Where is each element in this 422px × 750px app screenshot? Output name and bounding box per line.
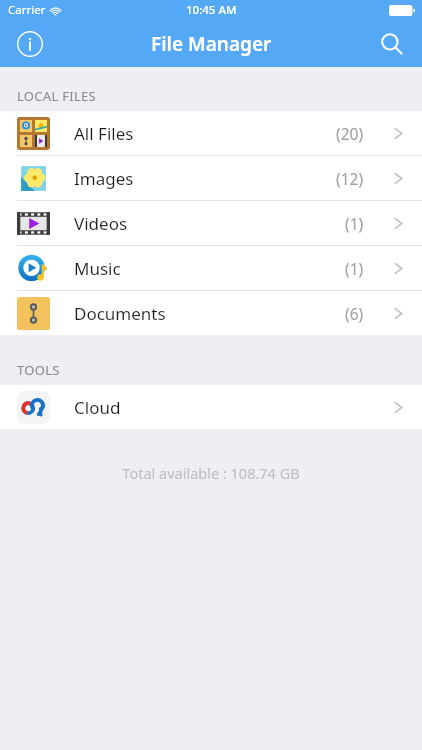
staticText: (1) — [345, 258, 364, 279]
staticText: File Manager — [151, 31, 272, 57]
button[interactable]: Cloud — [0, 385, 422, 429]
staticText: (12) — [336, 168, 364, 189]
staticText: TOOLS — [17, 361, 60, 379]
button[interactable]: Info — [10, 24, 50, 64]
staticText: (20) — [336, 123, 364, 144]
button[interactable]: All Files — [0, 111, 422, 155]
button[interactable]: Documents — [0, 291, 422, 335]
staticText: Total available : 108.74 GB — [0, 463, 422, 483]
button[interactable]: Videos — [0, 201, 422, 245]
button[interactable]: Images — [0, 156, 422, 200]
staticText: (6) — [345, 303, 364, 324]
staticText: Carrier — [8, 2, 46, 18]
staticText: Videos — [74, 212, 128, 235]
staticText: Music — [74, 257, 121, 280]
button[interactable]: Search — [372, 24, 412, 64]
staticText: (1) — [345, 213, 364, 234]
staticText: Documents — [74, 302, 166, 325]
staticText: Images — [74, 167, 134, 190]
staticText: 10:45 AM — [186, 2, 237, 18]
staticText: LOCAL FILES — [17, 87, 97, 105]
button[interactable]: Music — [0, 246, 422, 290]
staticText: Cloud — [74, 396, 121, 419]
staticText: All Files — [74, 122, 134, 145]
